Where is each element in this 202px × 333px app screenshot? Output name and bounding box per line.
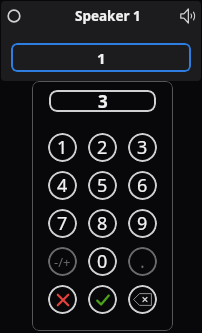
staticText: Speaker 1	[75, 7, 141, 25]
staticText: 6	[137, 173, 148, 198]
button[interactable]: Cancel	[48, 285, 77, 314]
button[interactable]: 7	[48, 209, 77, 238]
button[interactable]: 5	[88, 171, 117, 200]
staticText: 4	[57, 173, 68, 198]
button[interactable]: 4	[48, 171, 77, 200]
button[interactable]: 9	[128, 209, 157, 238]
button[interactable]: 0	[88, 247, 117, 276]
staticText: 8	[97, 211, 108, 236]
staticText: 0	[97, 249, 108, 274]
button[interactable]: 6	[128, 171, 157, 200]
staticText: 9	[137, 211, 148, 236]
staticText: 2	[97, 135, 108, 160]
staticText: 3	[98, 90, 108, 112]
button[interactable]: .	[128, 247, 157, 276]
button[interactable]: Power	[1, 1, 27, 31]
button[interactable]: 3	[128, 133, 157, 162]
button[interactable]: -/+	[48, 247, 77, 276]
button[interactable]: Confirm	[88, 285, 117, 314]
button[interactable]: 2	[88, 133, 117, 162]
button[interactable]: 1	[48, 133, 77, 162]
staticText: 1	[57, 135, 68, 160]
button[interactable]: 8	[88, 209, 117, 238]
button[interactable]: Backspace	[128, 285, 157, 314]
button[interactable]: 1	[11, 43, 191, 72]
staticText: 5	[97, 173, 108, 198]
button[interactable]: 3	[49, 90, 156, 112]
staticText: 3	[137, 135, 148, 160]
staticText: 7	[57, 211, 68, 236]
staticText: -/+	[54, 253, 71, 271]
button[interactable]: Volume	[175, 1, 201, 31]
staticText: .	[140, 249, 145, 274]
staticText: 1	[97, 48, 106, 68]
